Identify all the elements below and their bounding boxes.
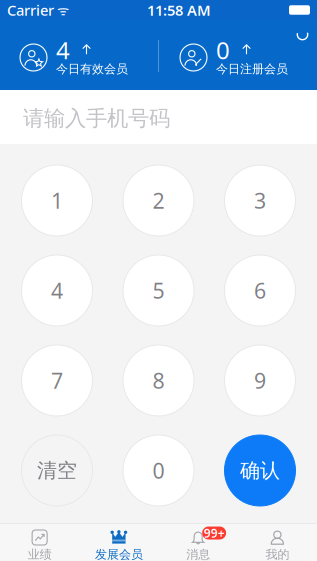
button[interactable]: 我的	[238, 523, 317, 561]
button[interactable]: 5	[123, 255, 194, 326]
button[interactable]: 3	[224, 165, 295, 236]
button[interactable]: 清空	[21, 435, 92, 506]
button[interactable]: 99+	[158, 523, 238, 561]
staticText: 5	[152, 276, 164, 305]
staticText: 请输入手机号码	[23, 105, 170, 132]
button[interactable]: 确认	[224, 435, 295, 506]
button[interactable]: 1	[21, 165, 92, 236]
staticText: 清空	[37, 458, 77, 483]
staticText: 3	[254, 186, 266, 215]
button[interactable]: 业绩	[0, 523, 79, 561]
staticText: 11:58 AM	[147, 0, 211, 20]
staticText: 今日注册会员	[216, 62, 288, 76]
staticText: 99+	[204, 525, 225, 541]
staticText: 6	[254, 276, 266, 305]
staticText: Carrier	[7, 0, 54, 20]
button[interactable]: 6	[224, 255, 295, 326]
staticText: 确认	[240, 458, 280, 483]
button[interactable]: 9	[224, 345, 295, 416]
staticText: 1	[51, 186, 63, 215]
staticText: 发展会员	[95, 547, 143, 561]
staticText: 9	[254, 366, 266, 395]
button[interactable]: 7	[21, 345, 92, 416]
button[interactable]: 请输入手机号码	[0, 90, 317, 144]
staticText: 消息	[186, 547, 210, 561]
button[interactable]: 0	[123, 435, 194, 506]
staticText: 今日有效会员	[56, 62, 128, 76]
staticText: 7	[51, 366, 63, 395]
staticText: 0	[152, 456, 164, 485]
button[interactable]: 发展会员	[79, 523, 158, 561]
staticText: 2	[152, 186, 164, 215]
button[interactable]: 4	[21, 255, 92, 326]
staticText: ᯤ	[54, 1, 69, 19]
button[interactable]: Refresh	[291, 23, 314, 46]
staticText: 4	[56, 34, 70, 66]
button[interactable]: 2	[123, 165, 194, 236]
staticText: 我的	[265, 547, 289, 561]
staticText: 8	[152, 366, 164, 395]
staticText: 4	[51, 276, 63, 305]
button[interactable]: 8	[123, 345, 194, 416]
staticText: 0	[216, 34, 230, 66]
staticText: 业绩	[28, 547, 52, 561]
